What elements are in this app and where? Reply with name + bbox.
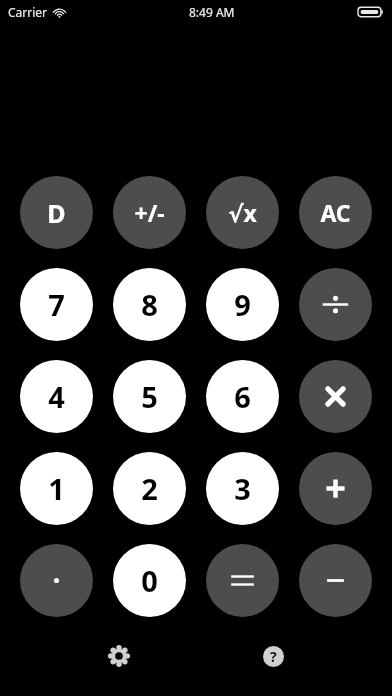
- staticText: +/-: [134, 197, 165, 228]
- button[interactable]: AC: [299, 176, 372, 249]
- button[interactable]: Help: [251, 634, 295, 678]
- button[interactable]: Divide: [299, 268, 372, 341]
- button[interactable]: 6: [206, 360, 279, 433]
- staticText: 1: [48, 469, 65, 508]
- staticText: 7: [48, 285, 65, 324]
- staticText: 5: [141, 377, 158, 416]
- button[interactable]: Minus: [299, 544, 372, 617]
- button[interactable]: Multiply: [299, 360, 372, 433]
- button[interactable]: 3: [206, 452, 279, 525]
- staticText: 8: [141, 285, 158, 324]
- staticText: D: [47, 196, 66, 230]
- staticText: 6: [234, 377, 251, 416]
- staticText: 8:49 AM: [189, 4, 235, 20]
- button[interactable]: +/-: [113, 176, 186, 249]
- staticText: 4: [48, 377, 65, 416]
- staticText: AC: [320, 197, 351, 228]
- button[interactable]: Settings: [97, 634, 141, 678]
- button[interactable]: 4: [20, 360, 93, 433]
- button[interactable]: Plus: [299, 452, 372, 525]
- staticText: ?: [270, 647, 277, 666]
- button[interactable]: D: [20, 176, 93, 249]
- staticText: 9: [234, 285, 251, 324]
- button[interactable]: Equals: [206, 544, 279, 617]
- button[interactable]: 9: [206, 268, 279, 341]
- button[interactable]: 1: [20, 452, 93, 525]
- button[interactable]: Decimal point: [20, 544, 93, 617]
- button[interactable]: 5: [113, 360, 186, 433]
- button[interactable]: 8: [113, 268, 186, 341]
- button[interactable]: √x: [206, 176, 279, 249]
- button[interactable]: 7: [20, 268, 93, 341]
- staticText: 0: [141, 561, 158, 600]
- button[interactable]: 2: [113, 452, 186, 525]
- staticText: √x: [228, 197, 257, 228]
- button[interactable]: 0: [113, 544, 186, 617]
- staticText: 2: [141, 469, 158, 508]
- staticText: Carrier: [8, 4, 48, 20]
- staticText: 3: [234, 469, 251, 508]
